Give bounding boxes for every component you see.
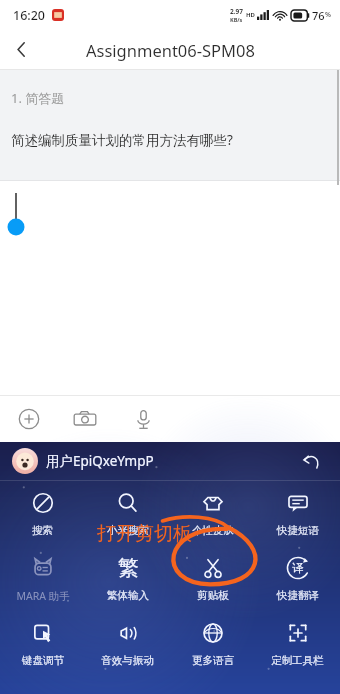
staticText: Assignment06-SPM08	[86, 39, 255, 61]
staticText: KB/s	[230, 16, 243, 23]
staticText: 2.97	[230, 7, 243, 16]
button[interactable]: 繁	[85, 546, 170, 611]
button[interactable]: 剪贴板	[170, 546, 255, 611]
button[interactable]: Back to keyboard	[294, 444, 328, 478]
staticText: %	[325, 10, 331, 20]
button[interactable]: Back	[0, 30, 42, 69]
staticText: 键盘调节	[22, 654, 64, 667]
staticText: 译	[292, 561, 304, 575]
staticText: 繁体输入	[107, 589, 149, 602]
staticText: 16:20	[13, 7, 46, 24]
staticText: MARA 助手	[16, 589, 70, 603]
button[interactable]: 小米搜索	[85, 481, 170, 546]
button[interactable]: 音效与振动	[85, 611, 170, 676]
button[interactable]: Voice input	[122, 398, 164, 440]
staticText: 打开剪切板	[97, 522, 192, 546]
button[interactable]: 快捷短语	[255, 481, 340, 546]
staticText: 剪贴板	[197, 589, 229, 602]
staticText: 小米搜索	[107, 524, 149, 537]
staticText: 更多语言	[192, 654, 234, 667]
staticText: 个性皮肤	[192, 524, 234, 537]
staticText: 繁	[118, 555, 139, 581]
button[interactable]: Add attachment	[8, 398, 50, 440]
button[interactable]: Camera	[64, 398, 106, 440]
button[interactable]: 个性皮肤	[170, 481, 255, 546]
button[interactable]: 定制工具栏	[255, 611, 340, 676]
staticText: HD	[246, 11, 255, 19]
staticText: 音效与振动	[101, 654, 154, 667]
button[interactable]: 搜索	[0, 481, 85, 546]
button[interactable]: User avatar	[12, 448, 38, 474]
button[interactable]: 键盘调节	[0, 611, 85, 676]
button[interactable]: 译	[255, 546, 340, 611]
staticText: 用户EpiQxeYmpP	[46, 452, 154, 470]
staticText: 简述编制质量计划的常用方法有哪些?	[11, 131, 233, 149]
staticText: 76	[312, 8, 325, 23]
staticText: 快捷翻译	[277, 589, 319, 602]
staticText: 搜索	[32, 524, 53, 537]
button[interactable]: 更多语言	[170, 611, 255, 676]
staticText: 定制工具栏	[271, 654, 324, 667]
staticText: 1. 简答题	[11, 89, 65, 107]
button[interactable]: MARA 助手	[0, 546, 85, 611]
staticText: 快捷短语	[277, 524, 319, 537]
